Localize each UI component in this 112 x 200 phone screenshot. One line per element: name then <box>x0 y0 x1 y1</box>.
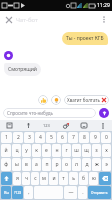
button[interactable]: р <box>52 158 61 171</box>
button[interactable]: е <box>42 144 51 157</box>
button[interactable]: з <box>92 144 101 157</box>
button[interactable]: ч <box>22 172 30 185</box>
button[interactable]: ж <box>92 158 101 171</box>
button[interactable]: ю <box>89 172 98 185</box>
button[interactable]: п <box>42 158 51 171</box>
button[interactable]: л <box>72 158 81 171</box>
staticText: 6 <box>61 134 64 141</box>
button[interactable]: г <box>62 144 71 157</box>
button[interactable]: Stickers <box>59 120 72 131</box>
button[interactable]: щ <box>82 144 91 157</box>
button[interactable]: 2 <box>13 132 23 143</box>
staticText: в <box>25 161 28 168</box>
staticText: 2 <box>17 134 20 141</box>
button[interactable]: Like <box>38 95 48 105</box>
staticText: Хватит болтать <box>67 97 100 103</box>
button[interactable]: ь <box>69 172 78 185</box>
button[interactable]: о <box>62 158 71 171</box>
button[interactable]: м <box>40 172 48 185</box>
staticText: р <box>55 161 59 168</box>
button[interactable]: , <box>24 186 33 199</box>
button[interactable]: 1 <box>1 132 12 143</box>
button[interactable]: б <box>79 172 88 185</box>
button[interactable]: 5 <box>46 132 56 143</box>
button[interactable]: 8 <box>79 132 89 143</box>
button[interactable]: 9 <box>90 132 100 143</box>
staticText: 11:29 <box>97 2 110 9</box>
button[interactable]: Shift <box>1 172 12 185</box>
staticText: л <box>75 161 78 168</box>
button[interactable]: ц <box>12 144 21 157</box>
staticText: 3 <box>28 134 31 141</box>
staticText: 7 <box>72 134 75 141</box>
button[interactable]: Хватит болтать <box>64 95 109 105</box>
staticText: д <box>85 161 89 168</box>
staticText: Спросите что-нибудь <box>7 110 53 116</box>
button[interactable]: 0 <box>101 132 111 143</box>
button[interactable]: More <box>96 120 109 131</box>
button[interactable]: т <box>59 172 68 185</box>
button[interactable]: Numbers <box>40 120 53 131</box>
button[interactable]: Keyboard settings <box>77 120 90 131</box>
button[interactable]: Close <box>3 14 14 25</box>
staticText: ?123 <box>14 190 22 195</box>
button[interactable]: More options <box>98 14 109 25</box>
staticText: ж <box>95 161 99 168</box>
button[interactable]: х <box>102 144 111 157</box>
staticText: 8 <box>83 134 86 141</box>
button[interactable]: с <box>31 172 39 185</box>
staticText: а <box>35 161 38 168</box>
button[interactable]: ф <box>1 158 11 171</box>
staticText: , <box>28 189 30 196</box>
button[interactable]: Voice input <box>22 120 35 131</box>
button[interactable]: у <box>22 144 31 157</box>
staticText: т <box>62 175 65 182</box>
button[interactable]: к <box>32 144 41 157</box>
staticText: у <box>25 147 28 154</box>
staticText: б <box>82 175 85 182</box>
button[interactable]: а <box>32 158 41 171</box>
staticText: ы <box>15 161 19 168</box>
button[interactable]: я <box>13 172 21 185</box>
button[interactable]: н <box>52 144 61 157</box>
staticText: м <box>42 175 46 182</box>
staticText: ф <box>4 161 8 168</box>
button[interactable]: э <box>102 158 111 171</box>
staticText: ш <box>74 147 79 154</box>
staticText: . <box>82 189 84 196</box>
button[interactable]: ы <box>12 158 21 171</box>
button[interactable]: Send <box>88 186 111 199</box>
staticText: н <box>55 147 59 154</box>
button[interactable]: Смотрящий <box>4 63 41 76</box>
button[interactable]: Send <box>99 108 109 118</box>
staticText: е <box>45 147 48 154</box>
button[interactable]: Спросите что-нибудь <box>3 108 96 118</box>
button[interactable]: Language <box>1 186 11 199</box>
button[interactable]: й <box>1 144 11 157</box>
button[interactable]: в <box>22 158 31 171</box>
button[interactable]: Clipboard <box>3 120 16 131</box>
staticText: 9 <box>94 134 97 141</box>
button[interactable]: Ты - проект КГБ <box>62 32 108 45</box>
button[interactable]: Backspace <box>99 172 111 185</box>
button[interactable]: ш <box>72 144 81 157</box>
button[interactable]: Idea <box>51 95 61 105</box>
button[interactable]: 4 <box>35 132 45 143</box>
button[interactable]: Symbols <box>12 186 23 199</box>
button[interactable]: . <box>78 186 87 199</box>
staticText: 5 <box>50 134 53 141</box>
staticText: Смотрящий <box>8 66 37 73</box>
staticText: ч <box>25 175 28 182</box>
staticText: щ <box>84 147 89 154</box>
button[interactable]: и <box>49 172 58 185</box>
staticText: э <box>105 161 108 168</box>
staticText: — <box>68 189 74 196</box>
staticText: 1 <box>5 134 8 141</box>
button[interactable]: 6 <box>57 132 67 143</box>
button[interactable]: — <box>64 186 77 199</box>
staticText: Чат-бот <box>16 16 98 24</box>
button[interactable]: 3 <box>24 132 34 143</box>
button[interactable]: д <box>82 158 91 171</box>
button[interactable]: 7 <box>68 132 78 143</box>
